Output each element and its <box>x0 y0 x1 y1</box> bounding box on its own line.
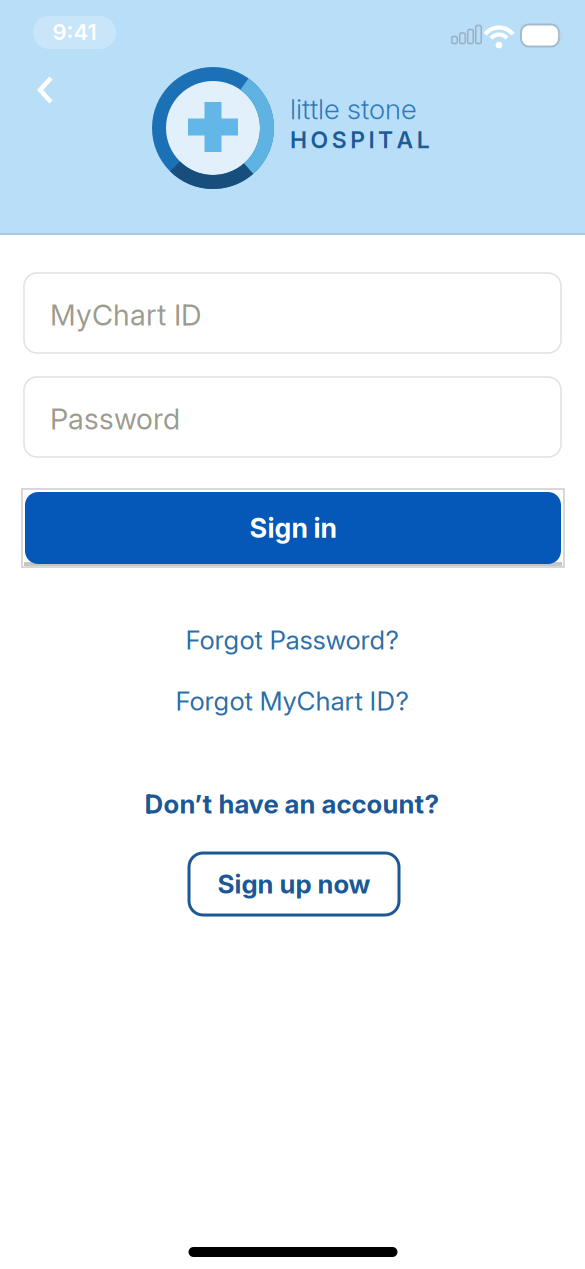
staticText: Sign up now <box>217 868 370 900</box>
staticText: Password <box>50 401 180 437</box>
staticText: H <box>290 126 307 154</box>
staticText: L <box>417 126 430 154</box>
staticText: A <box>396 126 413 154</box>
button[interactable]: Sign in <box>25 492 561 564</box>
staticText: 9:41 <box>52 19 96 45</box>
textField[interactable]: Password <box>50 401 535 437</box>
staticText: P <box>350 126 365 154</box>
staticText: Forgot Password? <box>185 624 398 656</box>
button[interactable]: Forgot Password? <box>185 624 398 656</box>
staticText: S <box>332 126 347 154</box>
textField[interactable]: MyChart ID <box>50 297 535 333</box>
button[interactable]: Back <box>35 75 55 105</box>
staticText: MyChart ID <box>50 297 202 333</box>
staticText: T <box>378 126 393 154</box>
staticText: I <box>369 126 375 154</box>
staticText: Forgot MyChart ID? <box>175 685 408 717</box>
button[interactable]: Forgot MyChart ID? <box>175 685 408 717</box>
staticText: O <box>310 126 328 154</box>
staticText: Don’t have an account? <box>144 788 439 820</box>
button[interactable]: Sign up now <box>189 853 399 915</box>
staticText: little stone <box>290 92 417 126</box>
staticText: Sign in <box>249 512 336 544</box>
